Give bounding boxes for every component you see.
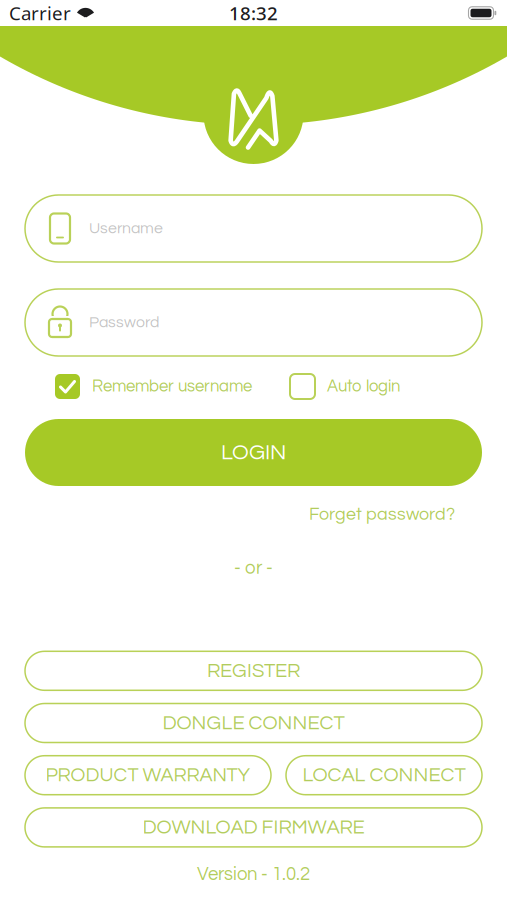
staticText: Forget password? [309, 505, 455, 523]
button[interactable]: Auto login [290, 374, 400, 399]
staticText: - or - [234, 558, 273, 578]
staticText: LOCAL CONNECT [302, 765, 465, 785]
staticText: LOGIN [221, 441, 286, 464]
staticText: DOWNLOAD FIRMWARE [142, 817, 364, 838]
button[interactable]: Password [0, 289, 507, 356]
button[interactable]: DONGLE CONNECT [25, 703, 482, 742]
staticText: Username [89, 220, 163, 237]
staticText: 18:32 [229, 1, 278, 25]
button[interactable]: DOWNLOAD FIRMWARE [25, 808, 482, 847]
button[interactable]: Forget password? [309, 505, 455, 523]
staticText: Password [89, 314, 159, 331]
staticText: Carrier [9, 1, 71, 25]
staticText: Auto login [327, 378, 400, 395]
button[interactable]: Remember username [55, 374, 252, 399]
button[interactable]: LOGIN [0, 419, 507, 486]
staticText: PRODUCT WARRANTY [45, 765, 250, 785]
button[interactable]: REGISTER [25, 651, 482, 690]
staticText: Remember username [92, 378, 252, 395]
button[interactable]: LOCAL CONNECT [286, 756, 482, 795]
staticText: DONGLE CONNECT [162, 713, 344, 733]
button[interactable]: PRODUCT WARRANTY [25, 756, 271, 795]
staticText: Version - 1.0.2 [197, 865, 310, 884]
button[interactable]: Username [0, 195, 507, 262]
staticText: REGISTER [207, 660, 300, 681]
